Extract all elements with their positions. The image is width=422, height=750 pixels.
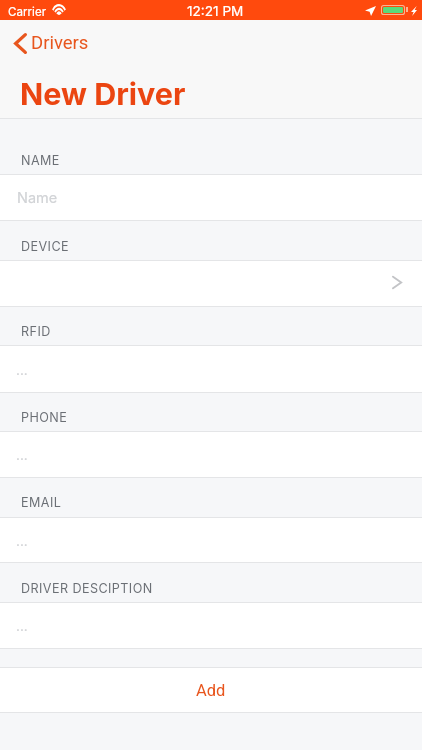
staticText: Name <box>17 189 58 207</box>
staticText: DRIVER DESCIPTION <box>21 581 153 596</box>
staticText: NAME <box>21 153 60 168</box>
button[interactable]: Add <box>0 668 422 712</box>
button[interactable]: Name field <box>0 175 422 220</box>
staticText: New Driver <box>20 75 186 112</box>
staticText: ... <box>16 533 28 549</box>
staticText: PHONE <box>21 410 68 425</box>
staticText: Drivers <box>31 32 89 54</box>
staticText: DEVICE <box>21 239 70 254</box>
staticText: Carrier <box>8 5 47 19</box>
staticText: 12:21 PM <box>187 3 244 19</box>
staticText: ... <box>16 618 28 634</box>
button[interactable]: Drivers <box>6 24 96 60</box>
staticText: EMAIL <box>21 495 62 510</box>
staticText: Add <box>196 681 226 700</box>
staticText: ... <box>16 362 28 378</box>
button[interactable]: Email field <box>0 518 422 563</box>
staticText: ... <box>16 447 28 463</box>
staticText: RFID <box>21 324 51 339</box>
